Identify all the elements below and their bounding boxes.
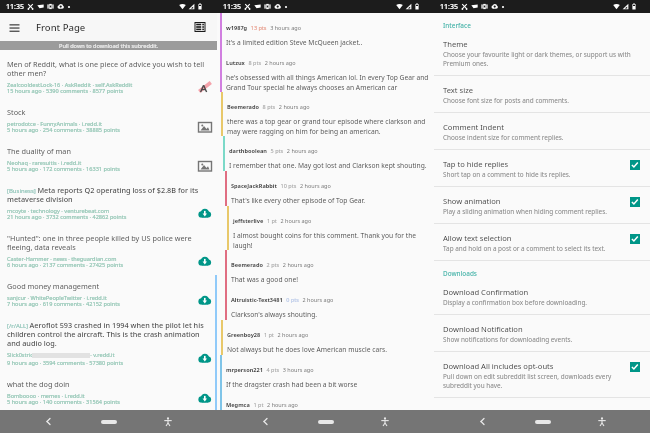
button[interactable]: The duality of man bbox=[0, 143, 217, 182]
staticText: 11:35 bbox=[440, 2, 458, 12]
button[interactable]: [Business] Meta reports Q2 operating los… bbox=[0, 182, 217, 230]
button[interactable]: Accessibility bbox=[156, 410, 180, 433]
staticText: Lutzux 8 pts 2 hours ago bbox=[226, 50, 296, 69]
staticText: mrperson221 4 pts 3 hours ago bbox=[226, 357, 314, 376]
staticText: I remember that one. May got lost and Cl… bbox=[229, 161, 427, 170]
button[interactable]: Text size bbox=[434, 76, 650, 112]
button[interactable]: Beemerado 8 pts 2 hours ago bbox=[217, 92, 434, 136]
staticText: If the dragster crash had been a bit wor… bbox=[226, 380, 358, 389]
staticText: Download All includes opt-outs bbox=[443, 361, 554, 371]
staticText: Allow text selection bbox=[443, 233, 512, 243]
button[interactable]: Home bbox=[309, 410, 343, 433]
staticText: Text size bbox=[443, 85, 474, 95]
staticText: Beemerado 8 pts 2 hours ago bbox=[227, 94, 310, 113]
button[interactable]: Allow text selection bbox=[434, 224, 650, 260]
button[interactable]: Home bbox=[92, 410, 126, 433]
button[interactable]: jeffsterlive 1 pt 2 hours ago bbox=[217, 206, 434, 250]
button[interactable]: darthboolean 5 pts 2 hours ago bbox=[217, 136, 434, 171]
staticText: 9 hours ago · 3594 comments · 57380 poin… bbox=[7, 359, 124, 367]
button[interactable]: w1987g 13 pts 3 hours ago bbox=[217, 13, 434, 48]
staticText: 11:35 bbox=[6, 2, 24, 12]
button[interactable]: Accessibility bbox=[590, 410, 614, 433]
button[interactable]: Back bbox=[36, 410, 60, 433]
button[interactable]: Change layout bbox=[189, 13, 211, 41]
button[interactable]: Back bbox=[470, 410, 494, 433]
button[interactable]: Show animation bbox=[434, 187, 650, 223]
button[interactable]: Tap to hide replies bbox=[434, 150, 650, 186]
staticText: Play a sliding animation when hiding com… bbox=[443, 207, 607, 216]
button[interactable]: Theme bbox=[434, 30, 650, 75]
staticText: That was a good one! bbox=[231, 275, 299, 284]
staticText: Stock bbox=[7, 107, 26, 117]
staticText: what the dog doin bbox=[7, 379, 70, 389]
staticText: Comment Indent bbox=[443, 122, 504, 132]
button[interactable]: Good money management bbox=[0, 278, 217, 317]
staticText: Download Confirmation bbox=[443, 287, 529, 297]
staticText: SpaceJackRabbit 10 pts 2 hours ago bbox=[231, 173, 331, 192]
staticText: Megmca 1 pt 2 hours ago bbox=[226, 392, 298, 411]
staticText: Interface bbox=[443, 21, 471, 30]
button[interactable]: Beemerado 2 pts 2 hours ago bbox=[217, 250, 434, 285]
button[interactable]: mrperson221 4 pts 3 hours ago bbox=[217, 355, 434, 390]
button[interactable]: Download All includes opt-outs bbox=[434, 352, 650, 397]
staticText: Tap and hold on a post or a comment to s… bbox=[443, 244, 606, 253]
staticText: Men of Reddit, what is one piece of advi… bbox=[7, 59, 212, 78]
button[interactable]: Megmca 1 pt 2 hours ago bbox=[217, 390, 434, 412]
button[interactable]: Comment Indent bbox=[434, 113, 650, 149]
staticText: Slick0strich · · v.redd.it bbox=[7, 351, 115, 359]
staticText: sanjcur · WhitePeopleTwitter · i.redd.it… bbox=[7, 294, 120, 308]
button[interactable]: Men of Reddit, what is one piece of advi… bbox=[0, 56, 217, 104]
staticText: Altruistic-Text3481 0 pts 2 hours ago bbox=[231, 287, 334, 306]
staticText: Good money management bbox=[7, 281, 100, 291]
staticText: Bomboooo · memes · i.redd.it 5 hours ago… bbox=[7, 392, 120, 406]
staticText: Short tap on a comment to hide its repli… bbox=[443, 170, 571, 179]
staticText: jeffsterlive 1 pt 2 hours ago bbox=[233, 208, 312, 227]
button[interactable]: [/r/ALL] Aeroflot 593 crashed in 1994 wh… bbox=[0, 317, 217, 376]
staticText: It's a limited edition Steve McQueen jac… bbox=[226, 38, 363, 47]
button[interactable]: what the dog doin bbox=[0, 376, 217, 415]
button[interactable]: Lutzux 8 pts 2 hours ago bbox=[217, 48, 434, 92]
staticText: Not always but he does love American mus… bbox=[227, 345, 387, 354]
staticText: Downloads bbox=[443, 269, 477, 278]
button[interactable]: Altruistic-Text3481 0 pts 2 hours ago bbox=[217, 285, 434, 320]
button[interactable]: Back bbox=[253, 410, 277, 433]
staticText: Choose indent size for comment replies. bbox=[443, 133, 564, 142]
staticText: w1987g 13 pts 3 hours ago bbox=[226, 15, 301, 34]
button[interactable]: Accessibility bbox=[373, 410, 397, 433]
staticText: Pull down on edit subreddit list screen,… bbox=[443, 372, 624, 390]
staticText: Download Notification bbox=[443, 324, 523, 334]
staticText: Neohaq · raresuitis · i.redd.it 5 hours … bbox=[7, 159, 120, 173]
button[interactable]: Download Notification bbox=[434, 315, 650, 351]
staticText: there was a top gear or grand tour episo… bbox=[227, 117, 431, 135]
button[interactable]: SpaceJackRabbit 10 pts 2 hours ago bbox=[217, 171, 434, 206]
staticText: [Business] Meta reports Q2 operating los… bbox=[7, 185, 212, 204]
staticText: That's like every other episode of Top G… bbox=[231, 196, 366, 205]
staticText: I almost bought coins for this comment. … bbox=[233, 231, 431, 249]
button[interactable]: Stock bbox=[0, 104, 217, 143]
staticText: The duality of man bbox=[7, 146, 71, 156]
button[interactable]: "Hunted": one in three people killed by … bbox=[0, 230, 217, 278]
staticText: "Hunted": one in three people killed by … bbox=[7, 233, 212, 252]
staticText: Tap to hide replies bbox=[443, 159, 509, 169]
staticText: ZealcooldestLock-16 · AskReddit · self.A… bbox=[7, 81, 133, 95]
staticText: Display a confirmation box before downlo… bbox=[443, 298, 588, 307]
staticText: Caster-Hammer · news · theguardian.com 6… bbox=[7, 255, 124, 269]
staticText: 11:35 bbox=[223, 2, 241, 12]
button[interactable]: Download Confirmation bbox=[434, 278, 650, 314]
staticText: mcoyte · technology · venturebeat.com 21… bbox=[7, 207, 127, 221]
staticText: Choose font size for posts and comments. bbox=[443, 96, 569, 105]
button[interactable]: Greenboy28 1 pt 2 hours ago bbox=[217, 320, 434, 355]
staticText: Greenboy28 1 pt 2 hours ago bbox=[227, 322, 309, 341]
button[interactable]: Home bbox=[526, 410, 560, 433]
staticText: Show notifications for downloading event… bbox=[443, 335, 573, 344]
staticText: darthboolean 5 pts 2 hours ago bbox=[229, 138, 318, 157]
staticText: petrodotce · FunnyAnimals · i.redd.it 5 … bbox=[7, 120, 120, 134]
staticText: Clarkson's always shouting. bbox=[231, 310, 318, 319]
staticText: Theme bbox=[443, 39, 468, 49]
staticText: Beemerado 2 pts 2 hours ago bbox=[231, 252, 314, 271]
staticText: Choose your favourite light or dark them… bbox=[443, 50, 640, 68]
button[interactable]: Open navigation menu bbox=[0, 13, 28, 41]
staticText: Show animation bbox=[443, 196, 501, 206]
staticText: [/r/ALL] Aeroflot 593 crashed in 1994 wh… bbox=[7, 320, 212, 348]
staticText: Front Page bbox=[36, 21, 86, 34]
